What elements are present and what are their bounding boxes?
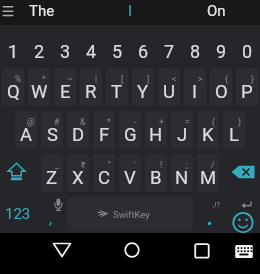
staticText: + [159,117,164,127]
button[interactable] [158,68,180,106]
button[interactable] [132,68,154,106]
button[interactable] [197,111,219,149]
staticText: ' [134,160,136,170]
button[interactable] [2,68,24,106]
staticText: ~ [67,74,73,84]
staticText: @ [27,117,35,127]
button[interactable] [145,111,167,149]
staticText: O [215,81,228,103]
button[interactable] [187,235,217,271]
staticText: 6 [138,41,149,62]
staticText: Q [7,81,20,103]
button[interactable] [67,154,89,192]
button[interactable] [229,235,259,271]
staticText: D [72,124,85,146]
staticText: 3 [60,41,71,62]
button[interactable]: I [90,0,170,26]
staticText: The [29,2,55,20]
button[interactable] [171,154,193,192]
button[interactable]: The [2,0,82,26]
staticText: T [111,81,123,103]
button[interactable] [93,154,115,192]
staticText: ^ [42,74,46,84]
staticText: Z [46,167,58,189]
staticText: 4 [86,41,97,62]
button[interactable] [0,197,39,231]
staticText: B [150,167,162,189]
staticText: 5 [112,41,123,62]
staticText: & [80,117,86,127]
staticText: * [107,117,111,127]
button[interactable] [223,111,245,149]
button[interactable] [171,111,193,149]
staticText: ) [238,117,241,127]
staticText: 9 [216,41,227,62]
staticText: = [185,117,190,127]
staticText: < [172,74,177,84]
staticText: # [54,117,60,127]
button[interactable] [28,68,50,106]
button[interactable] [104,29,130,67]
button[interactable] [184,68,206,106]
button[interactable] [117,235,147,271]
button[interactable] [52,29,78,67]
staticText: 123 [5,205,31,223]
button[interactable] [47,235,77,271]
button[interactable] [0,154,39,192]
staticText: I [192,81,198,103]
button[interactable] [130,29,156,67]
staticText: > [198,74,203,84]
button[interactable] [26,29,52,67]
button[interactable] [78,29,104,67]
button[interactable] [0,0,22,25]
button[interactable] [67,197,193,231]
button[interactable] [208,29,234,67]
button[interactable] [234,29,260,67]
button[interactable] [39,197,65,231]
button[interactable] [106,68,128,106]
staticText: ! [160,160,163,170]
staticText: M [200,167,217,189]
button[interactable] [41,154,63,192]
button[interactable] [119,111,141,149]
button[interactable] [210,68,232,106]
staticText: ; [186,160,188,170]
button[interactable] [182,29,208,67]
staticText: SwiftKey [113,209,150,220]
staticText: I [128,2,133,20]
button[interactable] [67,111,89,149]
button[interactable] [119,154,141,192]
staticText: L [229,124,239,146]
button[interactable] [54,68,76,106]
staticText: A [20,124,33,146]
button[interactable] [236,68,258,106]
button[interactable] [221,197,260,231]
button[interactable] [15,111,37,149]
button[interactable] [80,68,102,106]
staticText: J [177,124,188,146]
staticText: On [207,2,226,20]
staticText: | [95,74,98,84]
staticText: R [85,81,97,103]
staticText: { [225,74,228,84]
button[interactable] [197,154,219,192]
staticText: 0 [242,41,253,62]
staticText: C [98,167,111,189]
button[interactable] [195,197,221,231]
staticText: Y [137,81,149,103]
button[interactable] [0,29,26,67]
button[interactable] [145,154,167,192]
button[interactable] [221,154,260,192]
staticText: P [241,81,253,103]
staticText: H [149,124,163,146]
staticText: % [15,74,22,84]
staticText: S [47,124,58,146]
staticText: - [134,117,137,127]
button[interactable] [41,111,63,149]
button[interactable] [156,29,182,67]
button[interactable]: On [176,0,256,26]
staticText: W [31,81,48,103]
staticText: , [49,210,52,228]
button[interactable] [93,111,115,149]
staticText: 7 [164,41,175,62]
